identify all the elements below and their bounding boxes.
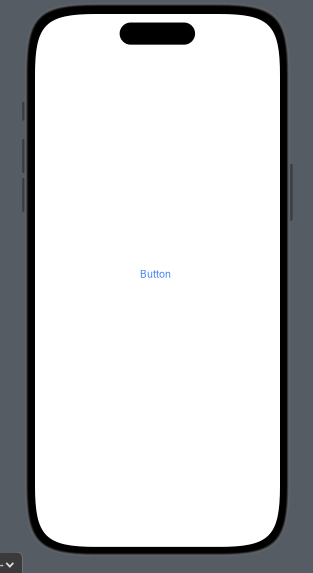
- button[interactable]: Button: [140, 268, 171, 280]
- staticText: Button: [140, 268, 171, 280]
